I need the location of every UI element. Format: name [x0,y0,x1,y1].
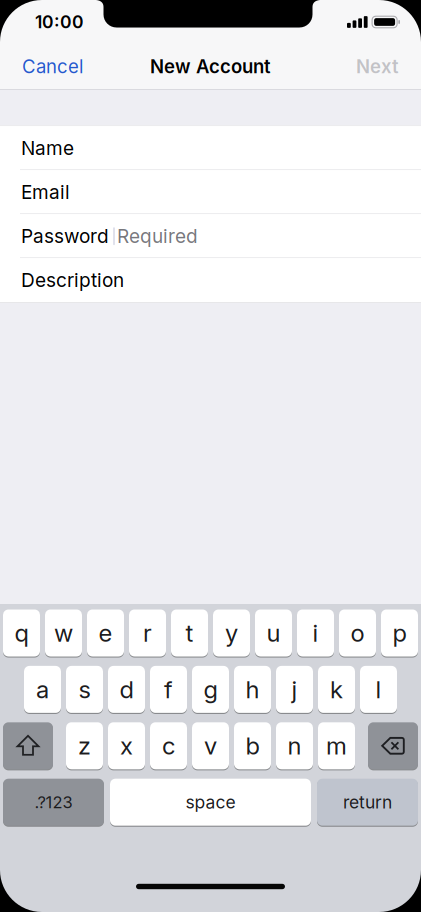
staticText: x [120,731,133,760]
button[interactable]: return [317,779,418,826]
button[interactable]: a [24,666,61,713]
staticText: Password [21,225,109,248]
staticText: space [185,792,235,813]
button[interactable]: m [318,722,355,769]
button[interactable]: u [255,609,292,656]
button[interactable]: n [276,722,313,769]
staticText: b [245,731,259,760]
staticText: Required [117,225,198,248]
button[interactable]: s [66,666,103,713]
button[interactable]: o [339,609,376,656]
staticText: .?123 [34,792,72,812]
button[interactable]: j [276,666,313,713]
staticText: Name [21,137,74,160]
staticText: return [343,792,392,813]
staticText: j [291,675,297,704]
staticText: f [164,675,173,704]
staticText: Next [356,55,399,78]
button[interactable]: t [171,609,208,656]
staticText: Description [21,269,124,292]
staticText: a [36,675,49,704]
staticText: Email [21,181,70,204]
staticText: e [98,618,112,647]
button[interactable]: e [87,609,124,656]
button[interactable]: Password [0,214,421,258]
button[interactable]: x [108,722,145,769]
button[interactable]: b [234,722,271,769]
button[interactable]: Description [0,258,421,302]
staticText: d [119,675,133,704]
staticText: i [312,618,318,647]
button[interactable]: Next [356,55,399,78]
button[interactable]: g [192,666,229,713]
staticText: o [350,618,364,647]
button[interactable]: f [150,666,187,713]
staticText: u [266,618,280,647]
button[interactable]: .?123 [3,779,104,826]
button[interactable]: k [318,666,355,713]
button[interactable]: r [129,609,166,656]
staticText: s [78,675,90,704]
button[interactable]: Email [0,170,421,214]
button[interactable]: Cancel [22,55,83,78]
button[interactable]: p [381,609,418,656]
button[interactable]: l [360,666,397,713]
button[interactable]: z [66,722,103,769]
staticText: l [375,675,381,704]
button[interactable]: d [108,666,145,713]
staticText: y [225,618,238,647]
staticText: m [326,731,347,760]
button[interactable]: Delete [368,722,418,769]
button[interactable]: q [3,609,40,656]
button[interactable]: c [150,722,187,769]
button[interactable]: w [45,609,82,656]
staticText: v [204,731,217,760]
staticText: h [245,675,259,704]
staticText: r [143,618,152,647]
staticText: g [203,675,217,704]
staticText: t [185,618,193,647]
staticText: z [78,731,91,760]
staticText: k [330,675,343,704]
button[interactable]: space [110,779,311,826]
staticText: n [287,731,301,760]
button[interactable]: i [297,609,334,656]
staticText: c [162,731,175,760]
staticText: Cancel [22,55,83,78]
staticText: p [392,618,406,647]
button[interactable]: v [192,722,229,769]
button[interactable]: Shift [3,722,53,769]
staticText: w [54,618,73,647]
button[interactable]: y [213,609,250,656]
staticText: 10:00 [35,11,84,32]
staticText: New Account [150,55,271,78]
staticText: q [14,618,28,647]
button[interactable]: h [234,666,271,713]
button[interactable]: Name [0,126,421,170]
